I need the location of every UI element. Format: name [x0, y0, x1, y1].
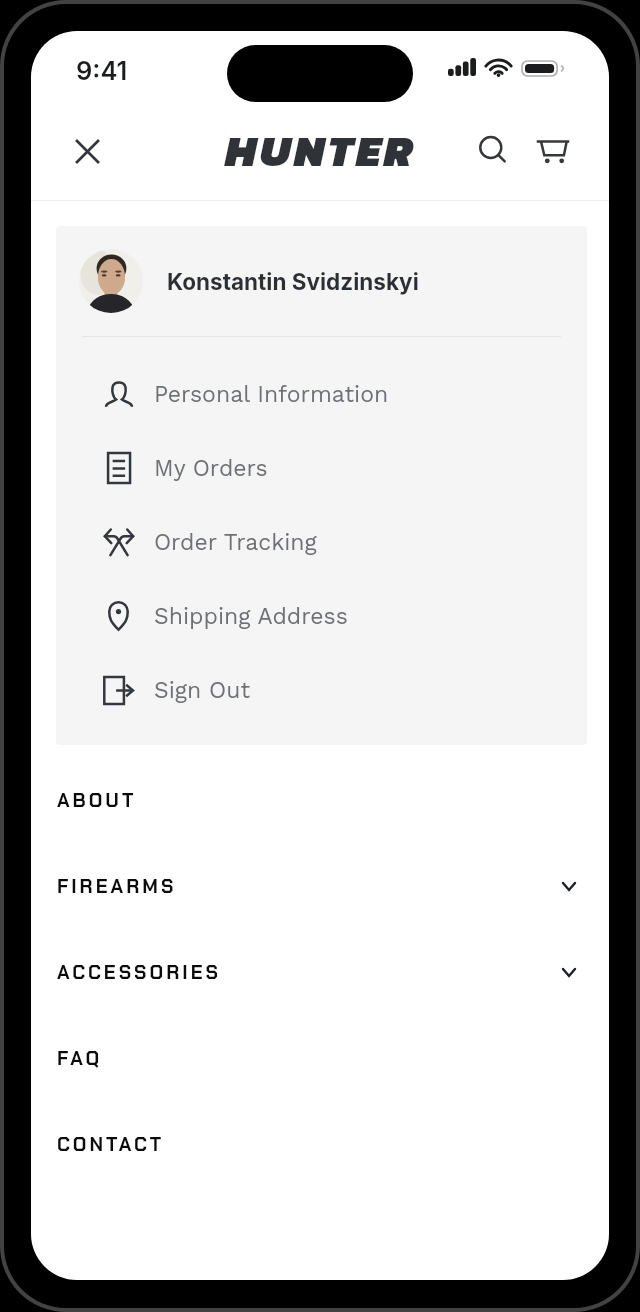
staticText: Konstantin Svidzinskyi — [167, 268, 419, 295]
staticText: FIREARMS — [57, 874, 177, 899]
staticText: HUNTER — [225, 118, 416, 184]
button[interactable]: Search — [472, 129, 516, 173]
staticText: FAQ — [57, 1046, 103, 1071]
staticText: ABOUT — [57, 788, 137, 813]
staticText: CONTACT — [57, 1132, 165, 1157]
button[interactable]: Personal Information — [56, 357, 587, 431]
button[interactable]: FIREARMS — [31, 843, 609, 929]
button[interactable]: Shipping Address — [56, 579, 587, 653]
staticText: My Orders — [154, 455, 268, 482]
button[interactable]: Konstantin Svidzinskyi — [56, 226, 587, 336]
button[interactable]: My Orders — [56, 431, 587, 505]
staticText: Shipping Address — [154, 603, 348, 630]
staticText: 9:41 — [76, 55, 128, 86]
button[interactable]: FAQ — [31, 1015, 609, 1101]
button[interactable]: ABOUT — [31, 757, 609, 843]
staticText: Order Tracking — [154, 529, 317, 556]
button[interactable]: Order Tracking — [56, 505, 587, 579]
button[interactable]: Close — [65, 129, 109, 173]
button[interactable]: ACCESSORIES — [31, 929, 609, 1015]
staticText: Sign Out — [154, 677, 251, 704]
staticText: Personal Information — [154, 381, 389, 408]
staticText: ACCESSORIES — [57, 960, 221, 985]
button[interactable]: Cart — [531, 129, 575, 173]
button[interactable]: Sign Out — [56, 653, 587, 727]
button[interactable]: CONTACT — [31, 1101, 609, 1187]
